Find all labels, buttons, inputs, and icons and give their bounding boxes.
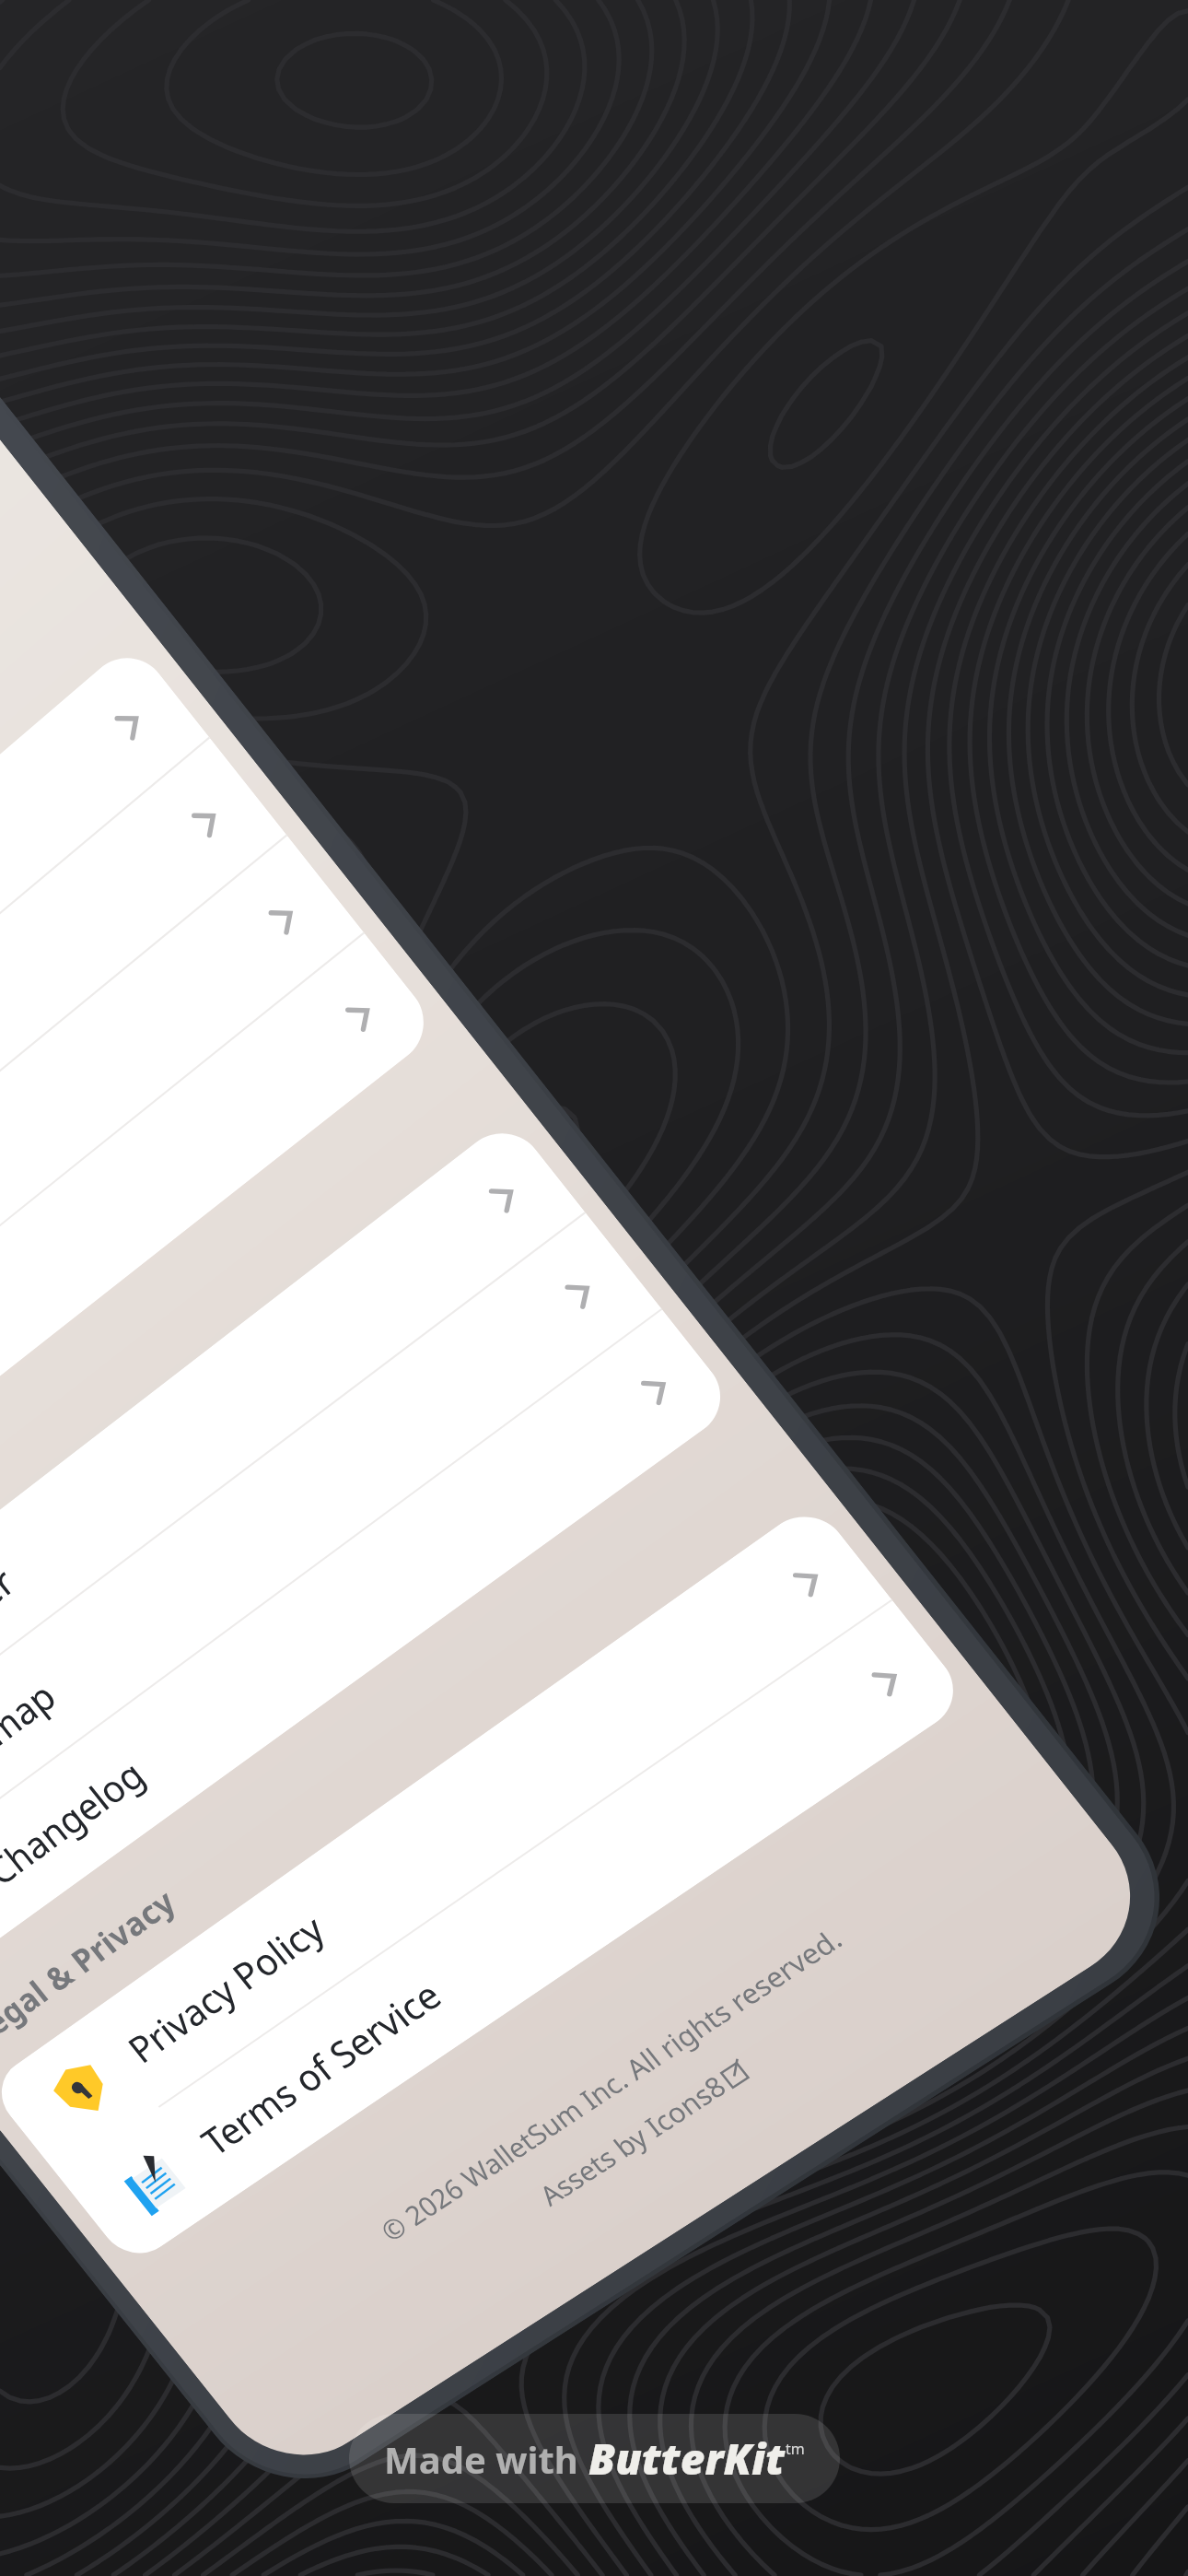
staticText: Assets by Icons8 bbox=[528, 2065, 736, 2215]
button[interactable]: Sync & Backup bbox=[0, 933, 441, 1656]
button[interactable]: Made with bbox=[349, 2414, 840, 2503]
staticText: Help Center bbox=[0, 1556, 24, 1717]
button[interactable]: Notifications bbox=[0, 738, 286, 1478]
staticText: Legal & Privacy bbox=[0, 1879, 184, 2054]
button[interactable]: Changelog bbox=[0, 1310, 738, 1998]
staticText: tm bbox=[786, 2439, 805, 2459]
staticText: © 2026 WalletSum Inc. All rights reserve… bbox=[373, 1920, 849, 2249]
staticText: Roadmap bbox=[0, 1670, 65, 1806]
staticText: Privacy Policy bbox=[117, 1903, 335, 2073]
button[interactable]: Help Center bbox=[0, 1116, 585, 1822]
button[interactable]: Currency bbox=[0, 640, 209, 1389]
button[interactable]: Privacy Policy bbox=[0, 1500, 891, 2176]
staticText: Terms of Service bbox=[191, 1969, 451, 2166]
staticText: Made with bbox=[384, 2434, 588, 2484]
button[interactable]: Appearance bbox=[0, 836, 363, 1567]
button[interactable]: Roadmap bbox=[0, 1213, 661, 1910]
button[interactable]: Terms of Service bbox=[59, 1601, 971, 2267]
staticText: ButterKit bbox=[588, 2430, 786, 2488]
staticText: Changelog bbox=[0, 1748, 154, 1896]
